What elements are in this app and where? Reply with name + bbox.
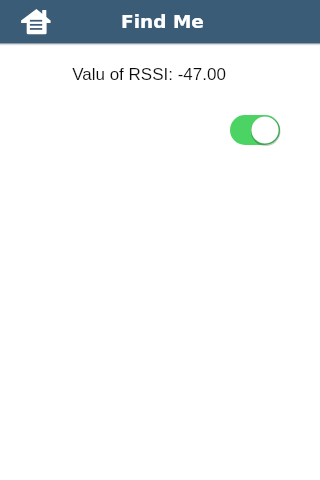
button[interactable]: Find Me toggle — [230, 115, 280, 145]
staticText: Find Me — [121, 11, 204, 33]
button[interactable]: Home — [14, 0, 58, 43]
staticText: Valu of RSSI: -47.00 — [0, 65, 309, 84]
